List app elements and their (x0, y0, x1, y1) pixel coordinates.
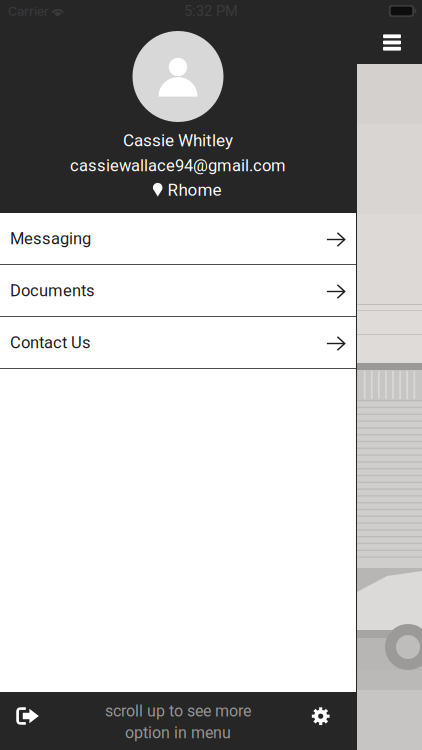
staticText: cassiewallace94@gmail.com (70, 156, 286, 175)
staticText: Cassie Whitley (123, 130, 233, 150)
button[interactable]: Settings (298, 692, 356, 750)
staticText: Rhome (167, 180, 221, 200)
button[interactable]: Messaging (0, 213, 356, 264)
button[interactable]: Menu (370, 22, 414, 62)
button[interactable]: Sign out (0, 692, 58, 750)
staticText: option in menu (125, 723, 231, 742)
button[interactable]: Contact Us (0, 317, 356, 368)
staticText: Carrier (8, 3, 49, 19)
staticText: Messaging (10, 229, 91, 248)
button[interactable]: Documents (0, 265, 356, 316)
staticText: scroll up to see more (105, 702, 251, 721)
staticText: Documents (10, 281, 95, 300)
staticText: 5:32 PM (184, 2, 238, 20)
staticText: Contact Us (10, 333, 91, 352)
